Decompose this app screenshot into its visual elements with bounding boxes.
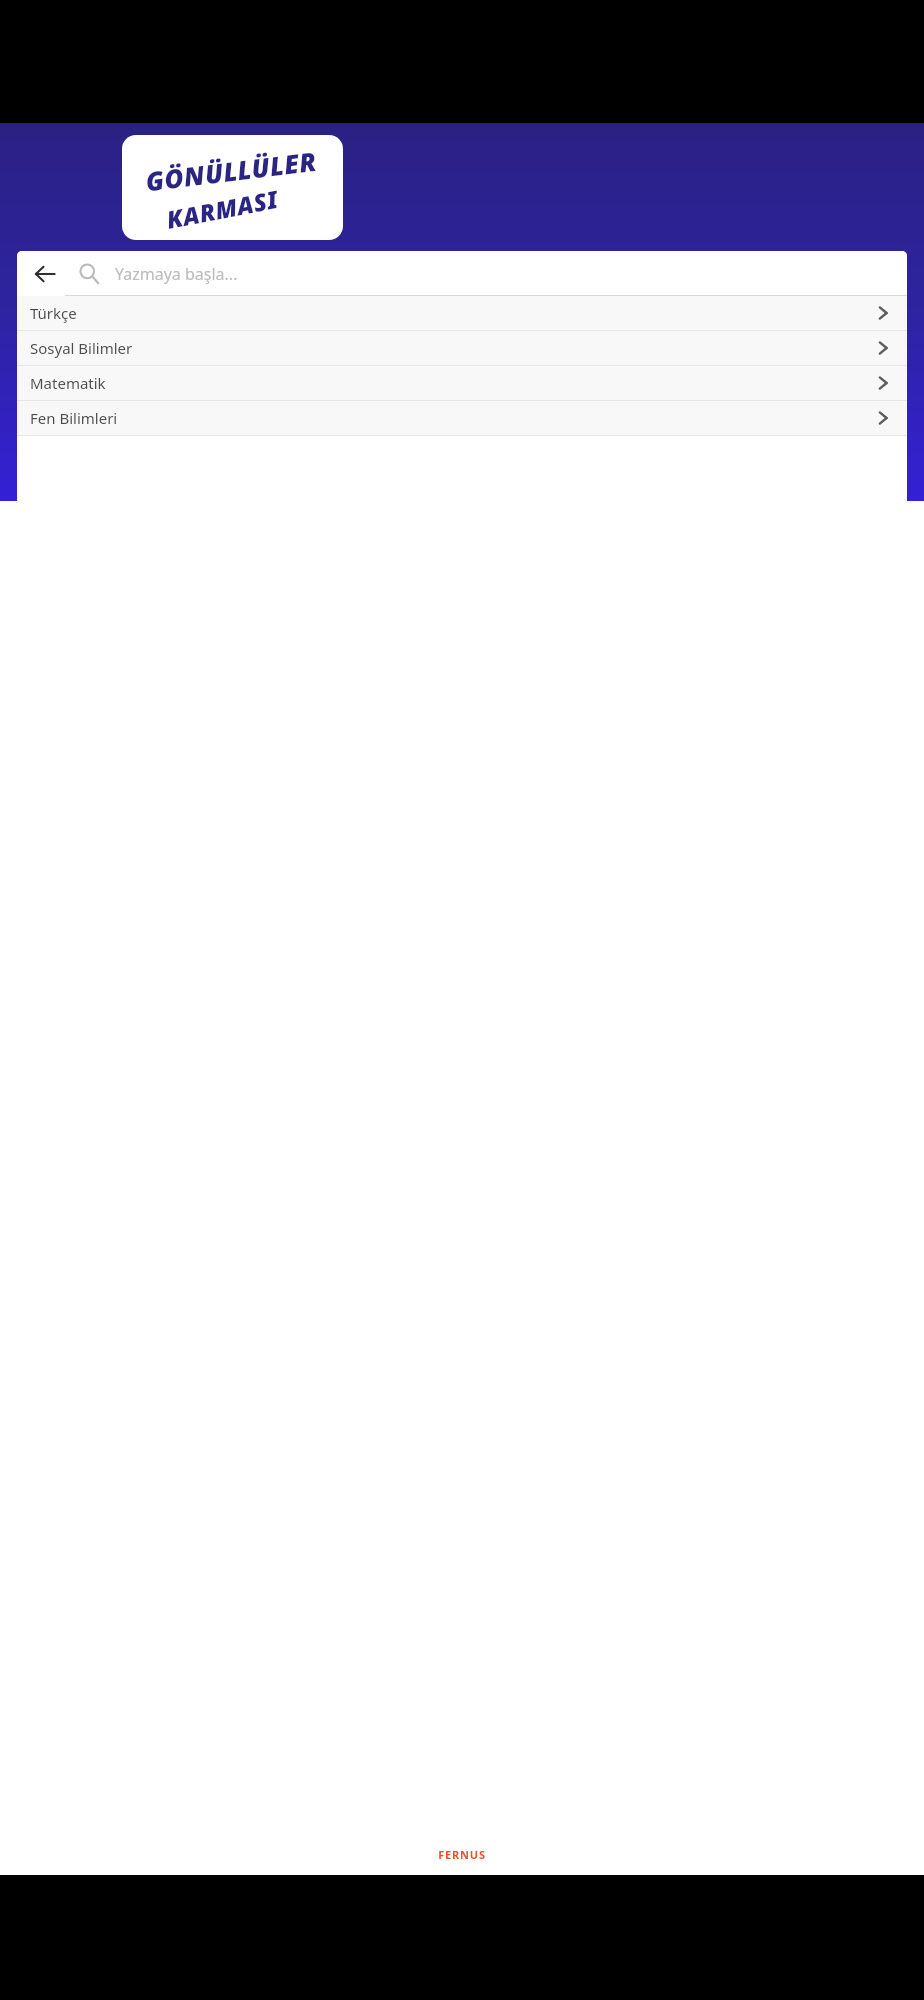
- staticText: GÖNÜLLÜLER: [143, 143, 318, 198]
- button[interactable]: Back: [25, 254, 65, 294]
- staticText: FERNUS: [438, 1847, 486, 1862]
- button[interactable]: Türkçe: [17, 296, 907, 330]
- button[interactable]: Fen Bilimleri: [17, 401, 907, 435]
- staticText: Türkçe: [30, 303, 871, 323]
- staticText: Matematik: [30, 373, 871, 393]
- button[interactable]: Matematik: [17, 366, 907, 400]
- staticText: Sosyal Bilimler: [30, 338, 871, 358]
- staticText: Fen Bilimleri: [30, 408, 871, 428]
- staticText: Yazmaya başla...: [115, 263, 238, 285]
- button[interactable]: GÖNÜLLÜLER: [122, 135, 343, 240]
- button[interactable]: Yazmaya başla...: [115, 263, 907, 285]
- button[interactable]: Sosyal Bilimler: [17, 331, 907, 365]
- staticText: KARMASI: [162, 182, 282, 236]
